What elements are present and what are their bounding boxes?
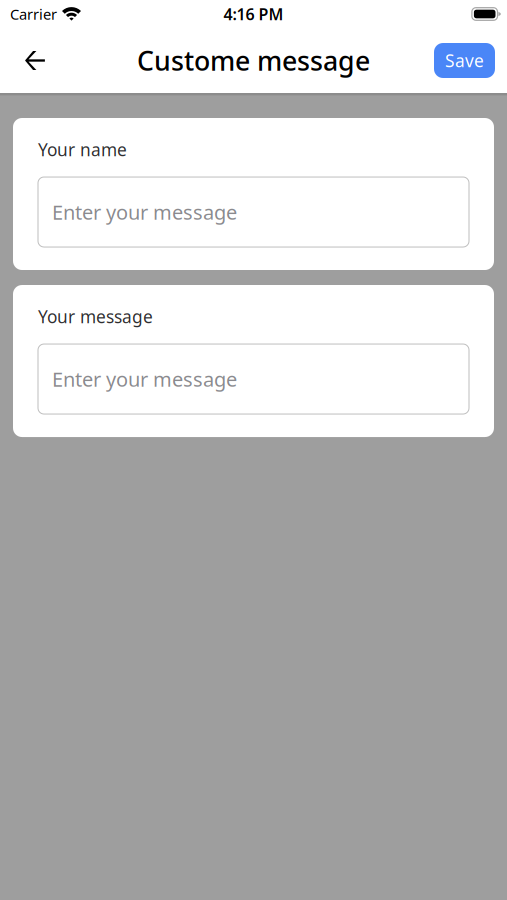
button[interactable]: Back	[13, 38, 57, 82]
staticText: Carrier	[10, 4, 57, 24]
staticText: Save	[445, 49, 484, 72]
staticText: Enter your message	[52, 366, 237, 392]
staticText: Your message	[38, 305, 153, 328]
staticText: Your name	[38, 138, 127, 161]
staticText: Enter your message	[52, 199, 237, 225]
staticText: Custome message	[137, 43, 370, 78]
staticText: 4:16 PM	[223, 3, 283, 25]
button[interactable]: Enter your message	[38, 177, 469, 247]
button[interactable]: Enter your message	[38, 344, 469, 414]
button[interactable]: Save	[434, 43, 495, 78]
